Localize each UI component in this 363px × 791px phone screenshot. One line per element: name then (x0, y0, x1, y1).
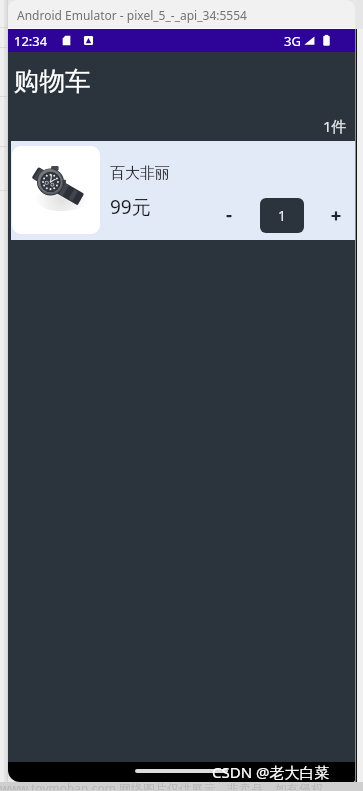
staticText: 1 (278, 206, 287, 225)
staticText: 百大非丽 (110, 164, 170, 183)
staticText: 3G (284, 32, 301, 50)
staticText: 1件 (323, 116, 347, 136)
staticText: www.toymoban.com 网络图片仅供展示，非卖品，如有侵权 (0, 780, 324, 790)
staticText: CSDN @老大白菜 (212, 762, 330, 782)
staticText: Android Emulator - pixel_5_-_api_34:5554 (17, 7, 247, 23)
button[interactable]: 百大非丽 (11, 141, 355, 240)
button[interactable]: 1 (260, 198, 304, 233)
button[interactable]: Increase quantity (321, 199, 351, 233)
button[interactable]: Decrease quantity (214, 199, 244, 233)
staticText: 99元 (110, 194, 151, 220)
staticText: 购物车 (14, 65, 91, 97)
staticText: 12:34 (14, 32, 48, 50)
